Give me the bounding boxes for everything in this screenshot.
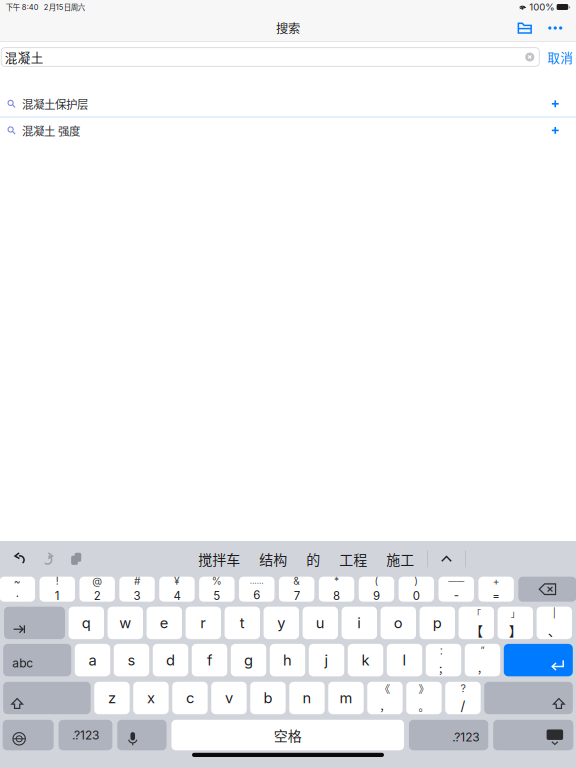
button[interactable]: 搅拌车	[198, 546, 240, 572]
button[interactable]: ——	[439, 577, 474, 602]
button[interactable]: t	[225, 607, 260, 639]
staticText: |	[553, 607, 556, 618]
staticText: 搅拌车	[198, 549, 240, 569]
button[interactable]: p	[420, 607, 455, 639]
staticText: ¥	[174, 575, 180, 587]
button[interactable]: ~	[0, 577, 35, 602]
button[interactable]: y	[264, 607, 299, 639]
button[interactable]: g	[231, 644, 266, 676]
button[interactable]: 混凝土 强度	[0, 117, 576, 143]
button[interactable]: ：	[426, 644, 461, 676]
staticText: 。	[418, 699, 429, 714]
button[interactable]: n	[289, 682, 325, 714]
button[interactable]: ¥	[159, 577, 195, 602]
button[interactable]: Paste	[68, 551, 84, 567]
button[interactable]: Hide keyboard	[493, 720, 573, 750]
staticText: d	[166, 651, 175, 669]
button[interactable]: w	[108, 607, 143, 639]
button[interactable]: e	[147, 607, 182, 639]
button[interactable]: x	[133, 682, 169, 714]
staticText: y	[277, 614, 285, 632]
staticText: !	[56, 575, 59, 587]
staticText: ；	[438, 661, 449, 676]
button[interactable]: )	[399, 577, 434, 602]
button[interactable]: k	[348, 644, 383, 676]
button[interactable]: Redo	[40, 551, 56, 567]
button[interactable]: Dictation	[117, 720, 167, 750]
button[interactable]: z	[94, 682, 130, 714]
staticText: a	[88, 651, 96, 669]
staticText: c	[186, 689, 194, 707]
staticText: u	[316, 614, 325, 632]
staticText: 下午 8:40	[6, 2, 39, 12]
staticText: 8	[333, 589, 340, 603]
button[interactable]: .?123	[409, 720, 488, 750]
button[interactable]: 结构	[259, 546, 287, 572]
staticText: 混凝土	[5, 48, 44, 66]
staticText: =	[492, 589, 500, 603]
staticText: 100%	[529, 1, 554, 13]
staticText: ·	[16, 589, 19, 603]
staticText: ……	[250, 576, 264, 586]
button[interactable]: Shift	[484, 682, 573, 714]
button[interactable]: 施工	[386, 546, 414, 572]
button[interactable]: &	[279, 577, 314, 602]
button[interactable]: 混凝土保护层	[0, 91, 576, 117]
button[interactable]: c	[172, 682, 208, 714]
staticText: 施工	[386, 549, 414, 569]
button[interactable]: 」	[498, 607, 533, 639]
button[interactable]: abc	[3, 644, 71, 676]
button[interactable]: 「	[459, 607, 494, 639]
button[interactable]: ”	[465, 644, 500, 676]
button[interactable]: Undo	[12, 551, 28, 567]
button[interactable]: l	[387, 644, 422, 676]
button[interactable]: !	[40, 577, 75, 602]
button[interactable]: Clear text	[523, 48, 537, 66]
button[interactable]: s	[114, 644, 149, 676]
button[interactable]: .?123	[59, 720, 112, 750]
button[interactable]: 取消	[547, 47, 573, 66]
button[interactable]: Return	[504, 644, 573, 676]
button[interactable]: d	[153, 644, 188, 676]
button[interactable]: q	[69, 607, 104, 639]
staticText: 搜索	[276, 19, 300, 37]
button[interactable]: v	[211, 682, 247, 714]
button[interactable]: 的	[306, 546, 320, 572]
staticText: 2月15日周六	[44, 2, 85, 12]
button[interactable]: a	[75, 644, 110, 676]
button[interactable]: r	[186, 607, 221, 639]
button[interactable]: 》	[406, 682, 442, 714]
button[interactable]: j	[309, 644, 344, 676]
staticText: 空格	[274, 725, 302, 745]
button[interactable]: Next keyboard	[3, 720, 54, 750]
button[interactable]: +	[478, 577, 514, 602]
button[interactable]: Delete	[518, 577, 576, 602]
button[interactable]: h	[270, 644, 305, 676]
button[interactable]: i	[342, 607, 377, 639]
button[interactable]: *	[319, 577, 354, 602]
button[interactable]: 空格	[171, 720, 404, 750]
button[interactable]: m	[328, 682, 364, 714]
button[interactable]: Files	[510, 17, 539, 39]
button[interactable]: ……	[239, 577, 274, 602]
button[interactable]: 《	[367, 682, 403, 714]
button[interactable]: o	[381, 607, 416, 639]
staticText: ”	[480, 644, 484, 656]
button[interactable]: |	[537, 607, 572, 639]
button[interactable]: Tab	[4, 607, 65, 639]
button[interactable]: #	[119, 577, 155, 602]
button[interactable]: b	[250, 682, 286, 714]
button[interactable]: More	[541, 17, 569, 39]
staticText: 7	[294, 589, 300, 603]
button[interactable]: 工程	[339, 546, 367, 572]
button[interactable]: Collapse suggestions	[440, 552, 453, 565]
button[interactable]: %	[199, 577, 235, 602]
button[interactable]: f	[192, 644, 227, 676]
button[interactable]: Shift	[3, 682, 91, 714]
button[interactable]: @	[79, 577, 115, 602]
staticText: @	[92, 575, 102, 587]
button[interactable]: ?	[445, 682, 481, 714]
button[interactable]: u	[303, 607, 338, 639]
staticText: 9	[373, 589, 380, 603]
button[interactable]: (	[359, 577, 394, 602]
